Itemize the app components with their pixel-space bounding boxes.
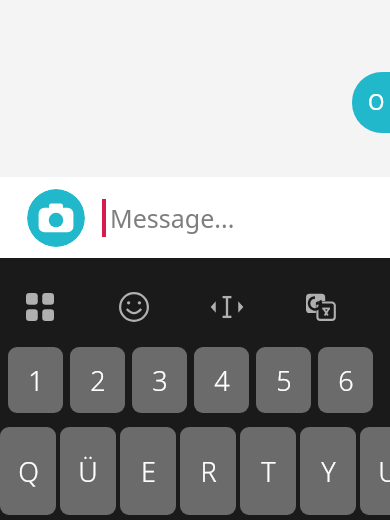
button[interactable]: Message...: [110, 188, 390, 248]
button[interactable]: 3: [132, 347, 187, 413]
button[interactable]: Camera: [27, 189, 85, 247]
staticText: Message...: [110, 201, 235, 235]
staticText: Y: [321, 453, 336, 490]
button[interactable]: Q: [0, 427, 56, 515]
staticText: T: [261, 453, 276, 490]
staticText: 1: [28, 362, 44, 399]
staticText: 6: [338, 362, 354, 399]
button[interactable]: Emoji: [110, 285, 158, 329]
button[interactable]: E: [120, 427, 176, 515]
button[interactable]: O: [352, 72, 390, 133]
button[interactable]: Text editing: [203, 285, 251, 329]
staticText: 2: [90, 362, 106, 399]
button[interactable]: Y: [300, 427, 356, 515]
button[interactable]: 2: [70, 347, 125, 413]
button[interactable]: 5: [256, 347, 311, 413]
button[interactable]: Ü: [60, 427, 116, 515]
button[interactable]: 1: [8, 347, 63, 413]
button[interactable]: U: [360, 427, 390, 515]
staticText: O: [368, 88, 385, 117]
staticText: U: [378, 453, 390, 490]
staticText: R: [200, 453, 217, 490]
button[interactable]: 6: [318, 347, 373, 413]
button[interactable]: Apps: [14, 285, 66, 329]
button[interactable]: 4: [194, 347, 249, 413]
staticText: 3: [152, 362, 168, 399]
staticText: Q: [18, 453, 39, 490]
staticText: 5: [276, 362, 292, 399]
button[interactable]: R: [180, 427, 236, 515]
button[interactable]: Translate: [297, 285, 345, 329]
staticText: E: [141, 453, 156, 490]
button[interactable]: T: [240, 427, 296, 515]
staticText: Ü: [78, 453, 98, 490]
staticText: 4: [214, 362, 230, 399]
